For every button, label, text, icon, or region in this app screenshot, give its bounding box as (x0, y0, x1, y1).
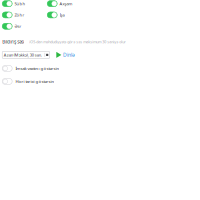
button[interactable]: Əsr (2, 21, 46, 32)
staticText: Əsr (15, 23, 22, 29)
staticText: İmsak vaxtını göstərsin (15, 66, 59, 71)
staticText: İşa (60, 12, 65, 18)
staticText: Zöhr (15, 12, 25, 18)
button[interactable]: Zöhr (2, 9, 46, 21)
staticText: Sübh (15, 1, 26, 6)
staticText: iOS-dan məhdudiyyətə görə səs maksimum 3… (29, 39, 126, 44)
button[interactable]: Axşam (47, 0, 91, 9)
staticText: Dinlə (63, 51, 75, 58)
staticText: Axşam (60, 1, 73, 6)
button[interactable]: Dinlə (56, 51, 75, 58)
button[interactable]: Hicri tarixi göstərsin (2, 75, 98, 88)
button[interactable]: İmsak vaxtını göstərsin (2, 62, 98, 75)
button[interactable]: Sübh (2, 0, 46, 9)
staticText: Azan (Məkkə), 30 san. (4, 52, 42, 58)
button[interactable]: İşa (47, 9, 91, 21)
button[interactable]: Azan (Məkkə), 30 san. (2, 51, 50, 58)
staticText: Bildiriş səsi (2, 39, 24, 45)
staticText: Hicri tarixi göstərsin (15, 79, 54, 84)
